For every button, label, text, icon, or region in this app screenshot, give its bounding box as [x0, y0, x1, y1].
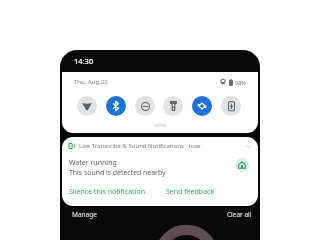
staticText: 14:30: [74, 56, 94, 66]
button[interactable]: Battery saver: [221, 96, 241, 116]
button[interactable]: Live Transcribe & Sound Notifications · …: [62, 137, 258, 206]
staticText: This sound is detected nearby: [69, 168, 166, 177]
staticText: Live Transcribe & Sound Notifications · …: [79, 142, 201, 150]
button[interactable]: Clear all: [227, 210, 252, 219]
button[interactable]: Auto rotate: [192, 96, 212, 116]
staticText: Water running: [69, 158, 117, 168]
button[interactable]: Wi-Fi: [77, 96, 97, 116]
button[interactable]: Silence this notification: [69, 187, 145, 197]
staticText: 98%: [235, 79, 246, 86]
button[interactable]: Do not disturb: [135, 96, 155, 116]
button[interactable]: Send feedback: [166, 187, 215, 197]
button[interactable]: Bluetooth: [106, 96, 126, 116]
staticText: Thu, Aug 22: [74, 78, 108, 86]
button[interactable]: Flashlight: [163, 96, 183, 116]
button[interactable]: Manage: [72, 210, 97, 219]
